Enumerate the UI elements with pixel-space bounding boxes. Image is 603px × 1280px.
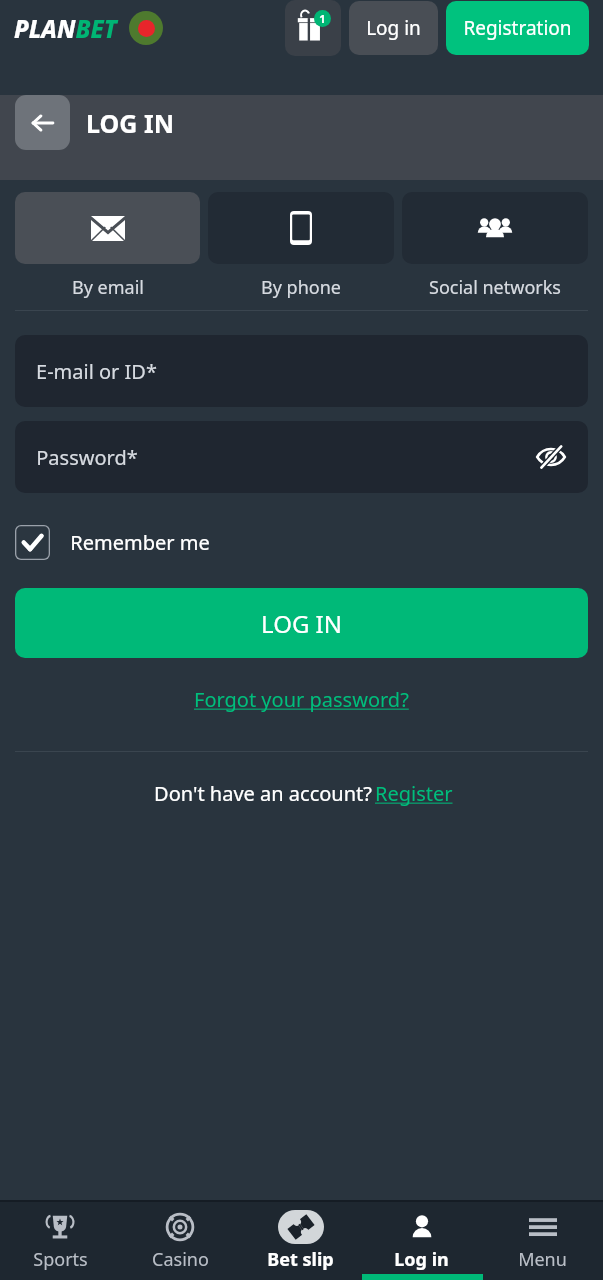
button[interactable]: Log in <box>361 1202 482 1272</box>
button[interactable]: Register <box>375 780 453 807</box>
button[interactable]: Social networks <box>402 192 588 300</box>
staticText: Password* <box>36 444 138 471</box>
staticText: Register <box>375 780 453 807</box>
button[interactable]: Bonuses <box>285 0 341 56</box>
staticText: By email <box>72 275 144 300</box>
staticText: Forgot your password? <box>194 686 409 713</box>
staticText: Log in <box>366 15 421 41</box>
staticText: LOG IN <box>261 607 342 640</box>
button[interactable]: Back <box>15 95 70 150</box>
button[interactable]: Bet slip <box>240 1202 361 1272</box>
button[interactable]: Remember me <box>15 525 220 560</box>
button[interactable]: Sports <box>0 1202 120 1272</box>
button[interactable]: LOG IN <box>15 588 588 658</box>
button[interactable]: Casino <box>120 1202 240 1272</box>
button[interactable]: Password* <box>15 421 588 493</box>
staticText: Sports <box>33 1247 88 1272</box>
staticText: Bet slip <box>267 1247 334 1272</box>
staticText: Remember me <box>70 529 210 556</box>
staticText: Social networks <box>429 275 561 300</box>
other: Show password <box>534 440 568 474</box>
staticText: PLANBET <box>14 12 117 45</box>
button[interactable]: Forgot your password? <box>188 680 415 719</box>
button[interactable]: Registration <box>446 1 589 55</box>
button[interactable]: E-mail or ID* <box>15 335 588 407</box>
staticText: E-mail or ID* <box>36 358 157 385</box>
staticText: LOG IN <box>86 106 174 140</box>
staticText: Menu <box>518 1247 567 1272</box>
staticText: Don't have an account? <box>151 780 375 807</box>
button[interactable]: By phone <box>208 192 394 300</box>
button[interactable]: By email <box>15 192 200 300</box>
button[interactable]: Log in <box>349 1 438 55</box>
button[interactable]: Menu <box>482 1202 603 1272</box>
staticText: Casino <box>152 1247 209 1272</box>
staticText: Log in <box>394 1247 449 1272</box>
staticText: Registration <box>463 15 572 41</box>
staticText: By phone <box>261 275 341 300</box>
staticText: 1 <box>319 11 326 26</box>
